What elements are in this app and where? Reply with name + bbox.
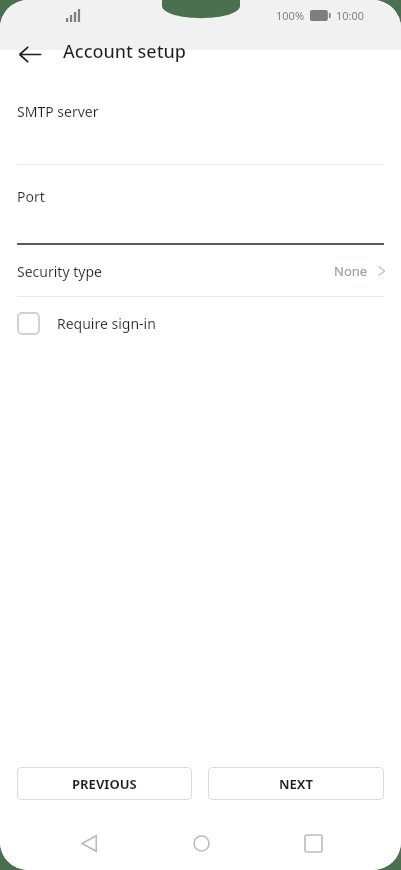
staticText: SMTP server <box>17 102 99 121</box>
button[interactable]: Back <box>8 32 52 76</box>
staticText: Require sign-in <box>57 314 156 333</box>
staticText: Port <box>17 187 45 206</box>
button[interactable]: Recents <box>289 819 337 867</box>
button[interactable]: SMTP server <box>0 80 401 165</box>
staticText: Security type <box>17 262 102 281</box>
staticText: 100% <box>276 8 305 23</box>
button[interactable]: Home <box>177 819 225 867</box>
button[interactable]: Port <box>0 165 401 245</box>
button[interactable]: Require sign-in <box>0 297 401 349</box>
staticText: PREVIOUS <box>72 775 137 793</box>
button[interactable]: Back <box>65 819 113 867</box>
button[interactable]: NEXT <box>208 767 384 800</box>
staticText: None <box>334 262 368 280</box>
staticText: Account setup <box>63 39 187 64</box>
button[interactable]: PREVIOUS <box>17 767 192 800</box>
staticText: 10:00 <box>336 8 365 23</box>
staticText: NEXT <box>279 775 314 793</box>
button[interactable]: Security type <box>0 245 401 297</box>
